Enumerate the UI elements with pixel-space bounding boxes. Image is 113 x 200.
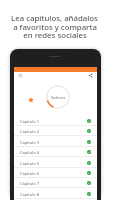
staticText: a favoritos y comparta [13, 22, 97, 33]
staticText: Capítulo 5 [20, 161, 39, 166]
button[interactable]: Capítulo 8 [14, 189, 97, 199]
button[interactable]: Settings [18, 73, 23, 78]
staticText: Capítulo 2 [20, 129, 39, 134]
button[interactable]: Capítulo 3 [14, 137, 97, 147]
staticText: Capítulo 3 [20, 140, 39, 145]
button[interactable]: Share [88, 73, 93, 78]
button[interactable]: Capítulo 4 [14, 147, 97, 157]
staticText: en redes sociales [23, 30, 87, 41]
button[interactable]: Capítulo 1 [14, 116, 97, 126]
staticText: Capítulo 1 [20, 119, 39, 124]
staticText: Capítulo 4 [20, 150, 39, 155]
button[interactable]: Salmos [46, 85, 70, 109]
button[interactable]: Capítulo 6 [14, 168, 97, 178]
staticText: Salmos [51, 94, 66, 100]
button[interactable]: Capítulo 2 [14, 126, 97, 136]
button[interactable]: Capítulo 7 [14, 178, 97, 188]
staticText: Capítulo 7 [20, 181, 39, 186]
staticText: Capítulo 8 [20, 192, 39, 197]
staticText: Capítulo 6 [20, 171, 39, 176]
button[interactable]: Capítulo 5 [14, 158, 97, 168]
button[interactable]: Favorite [28, 97, 34, 103]
staticText: Lea capítulos, añádalos [11, 13, 98, 24]
